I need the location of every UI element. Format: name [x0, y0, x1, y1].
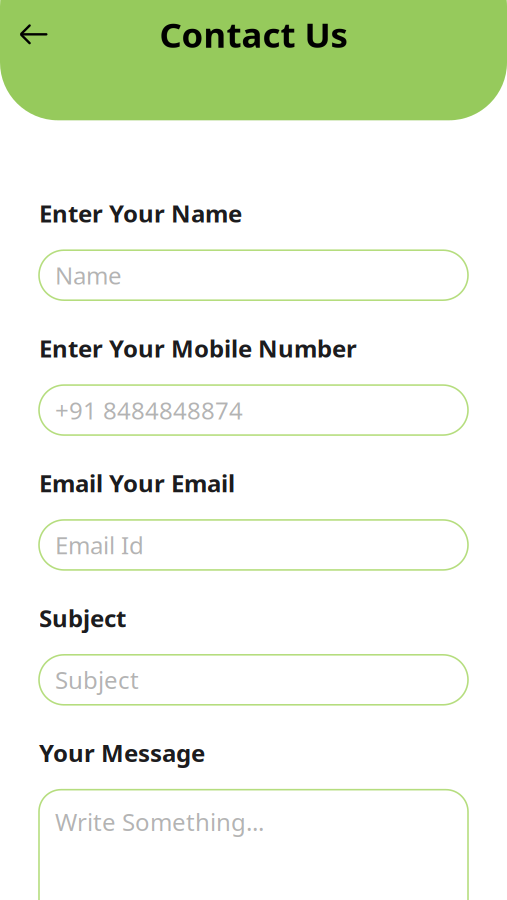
button[interactable]: Email Id: [39, 520, 468, 570]
staticText: +91 8484848874: [55, 394, 243, 426]
staticText: Enter Your Name: [39, 197, 242, 229]
button[interactable]: Name: [39, 250, 468, 300]
staticText: Email Id: [55, 529, 144, 561]
staticText: Subject: [39, 602, 126, 634]
staticText: Email Your Email: [39, 467, 235, 499]
button[interactable]: Back: [8, 8, 60, 60]
staticText: Name: [55, 259, 122, 291]
staticText: Write Something...: [55, 806, 264, 838]
button[interactable]: Subject: [39, 655, 468, 705]
staticText: Your Message: [39, 737, 205, 769]
staticText: Subject: [55, 664, 139, 696]
staticText: Enter Your Mobile Number: [39, 332, 357, 364]
button[interactable]: Write Something...: [39, 790, 468, 900]
staticText: Contact Us: [159, 11, 347, 57]
button[interactable]: +91 8484848874: [39, 385, 468, 435]
